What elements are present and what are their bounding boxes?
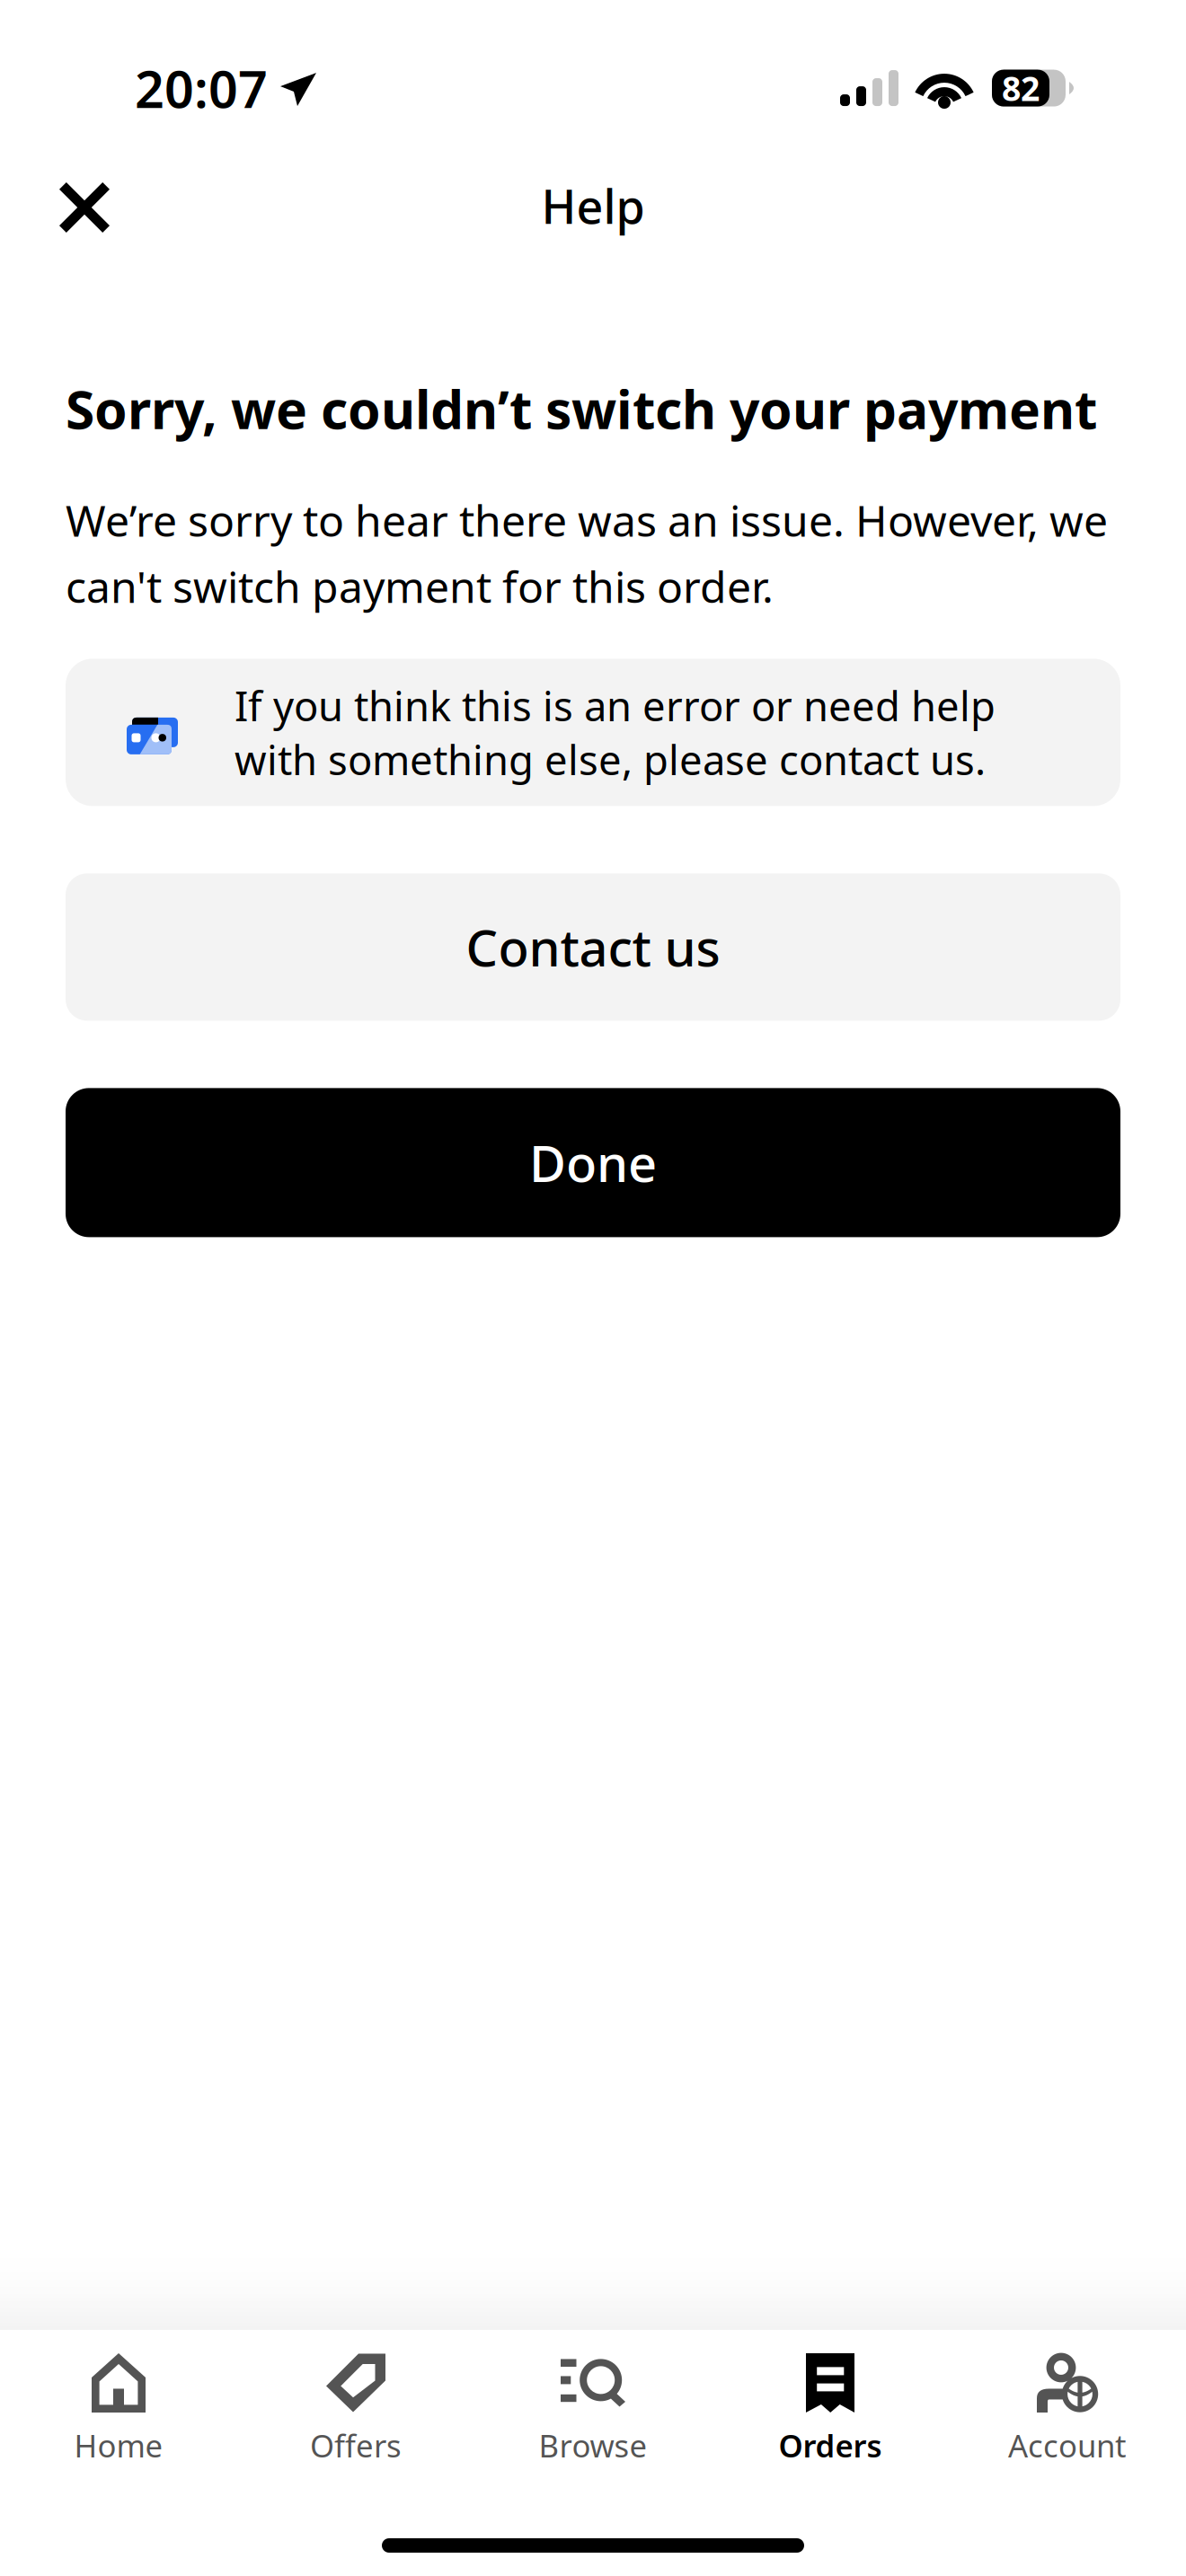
button[interactable]: Contact us: [66, 873, 1120, 1021]
staticText: We’re sorry to hear there was an issue. …: [66, 491, 1108, 615]
button[interactable]: Close: [0, 148, 146, 249]
button[interactable]: Account: [949, 2324, 1186, 2482]
staticText: Contact us: [466, 914, 720, 980]
staticText: Account: [1008, 2425, 1127, 2466]
staticText: Sorry, we couldn’t switch your payment: [66, 374, 1097, 444]
staticText: Orders: [779, 2425, 882, 2466]
staticText: 20:07: [135, 54, 268, 122]
staticText: Offers: [310, 2425, 402, 2466]
button[interactable]: Orders: [712, 2324, 949, 2482]
staticText: 82: [1002, 66, 1040, 110]
staticText: Help: [541, 175, 645, 237]
button[interactable]: Home: [0, 2324, 237, 2482]
staticText: Browse: [539, 2425, 647, 2466]
staticText: Home: [74, 2425, 163, 2466]
button[interactable]: Done: [66, 1088, 1120, 1237]
staticText: Done: [529, 1129, 657, 1196]
button[interactable]: Browse: [474, 2324, 712, 2482]
staticText: If you think this is an error or need he…: [235, 678, 996, 786]
button[interactable]: Offers: [237, 2324, 474, 2482]
